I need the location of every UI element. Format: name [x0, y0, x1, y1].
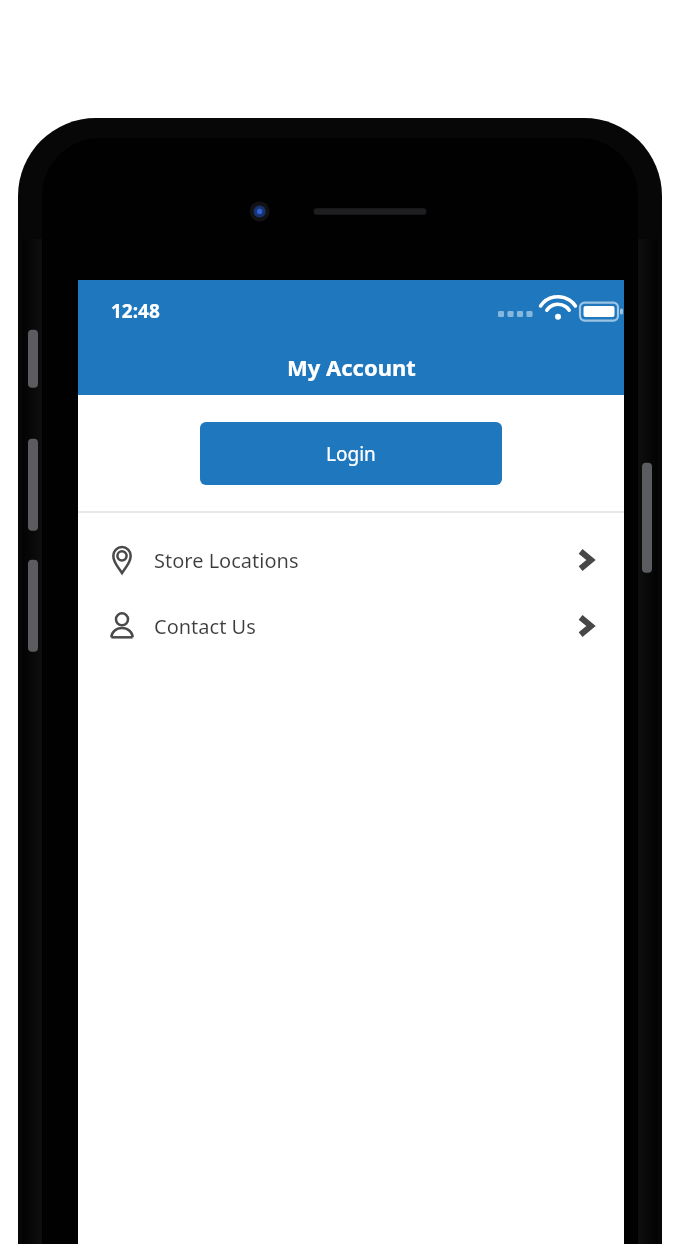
other: Open Contact Us — [572, 613, 598, 639]
button[interactable]: Login — [200, 422, 502, 485]
staticText: Contact Us — [154, 613, 256, 640]
staticText: Login — [326, 441, 376, 467]
other: Open Store Locations — [572, 547, 598, 573]
staticText: My Account — [287, 352, 416, 382]
button[interactable]: Contact Us — [78, 593, 624, 659]
button[interactable]: Store Locations — [78, 527, 624, 593]
staticText: Store Locations — [154, 547, 299, 574]
staticText: 12:48 — [111, 298, 160, 324]
